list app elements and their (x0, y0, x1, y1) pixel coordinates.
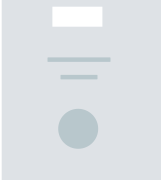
button[interactable]: Avatar (58, 109, 98, 149)
